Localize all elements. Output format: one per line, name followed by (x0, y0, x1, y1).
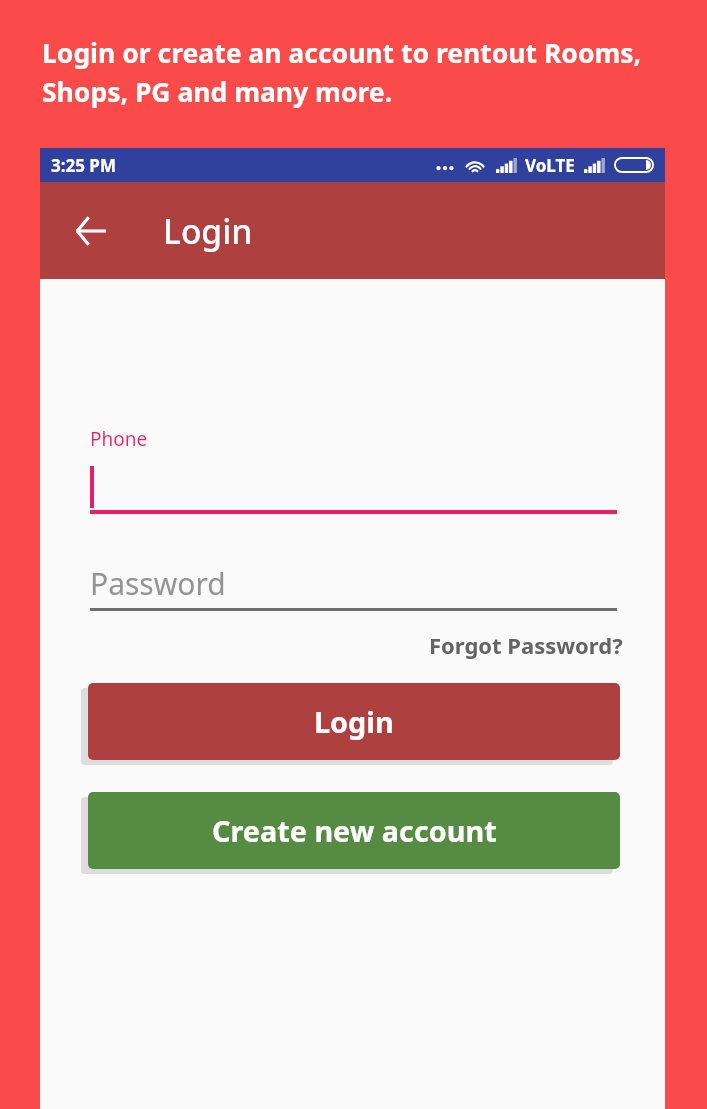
staticText: Login or create an account to rentout Ro… (42, 35, 642, 110)
staticText: 3:25 PM (51, 154, 116, 177)
staticText: Login (314, 702, 394, 741)
staticText: Forgot Password? (429, 630, 623, 660)
button[interactable]: Create new account (88, 792, 620, 869)
button[interactable]: Forgot Password? (429, 630, 623, 660)
button[interactable]: Login (88, 683, 620, 760)
button[interactable]: Password field (90, 561, 617, 611)
staticText: Login (163, 208, 253, 254)
staticText: Create new account (212, 811, 497, 850)
staticText: Password (90, 563, 226, 604)
button[interactable]: Back (63, 204, 117, 258)
button[interactable]: Phone number field (90, 426, 617, 514)
staticText: VoLTE (525, 154, 575, 177)
staticText: Phone (90, 426, 148, 452)
